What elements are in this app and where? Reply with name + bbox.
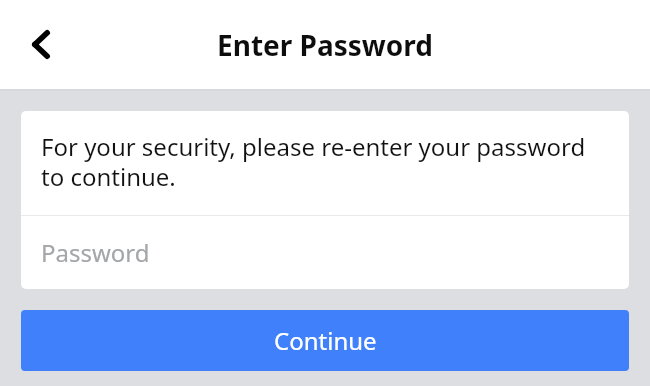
button[interactable]: Password field — [21, 216, 629, 289]
staticText: Enter Password — [217, 26, 433, 64]
button[interactable]: Continue — [21, 310, 629, 371]
staticText: For your security, please re-enter your … — [41, 130, 610, 193]
button[interactable]: Back — [18, 21, 64, 67]
staticText: Password — [41, 236, 150, 269]
staticText: Continue — [274, 324, 377, 357]
